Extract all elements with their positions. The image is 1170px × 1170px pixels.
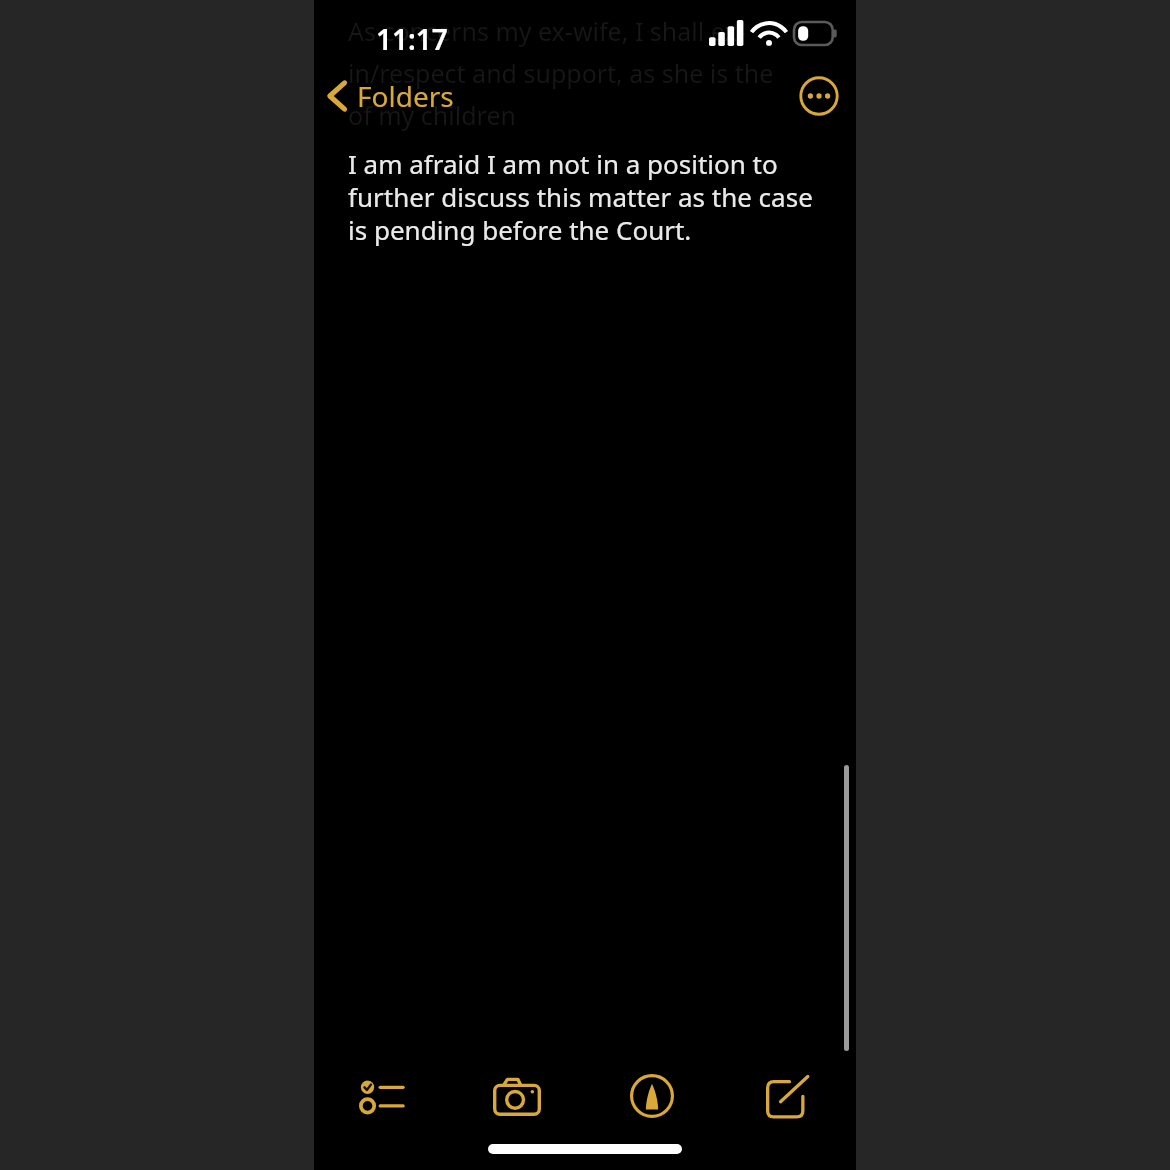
button[interactable]: More options: [796, 73, 842, 119]
button[interactable]: Camera: [449, 1062, 584, 1130]
button[interactable]: Folders: [314, 73, 464, 119]
staticText: Folders: [357, 77, 454, 115]
staticText: 11:17: [376, 20, 448, 58]
staticText: of my children: [348, 98, 516, 132]
staticText: I am afraid I am not in a position to fu…: [348, 146, 814, 248]
button[interactable]: New note: [720, 1062, 856, 1130]
button[interactable]: Markup: [584, 1062, 720, 1130]
button[interactable]: Checklist: [314, 1062, 449, 1130]
staticText: As concerns my ex-wife, I shall ex-: [348, 14, 746, 48]
staticText: in/respect and support, as she is the: [348, 56, 774, 90]
